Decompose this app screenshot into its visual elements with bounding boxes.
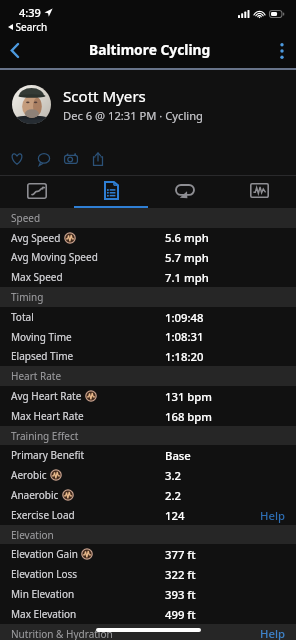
button[interactable]: Max Elevation [0,604,296,624]
staticText: Baltimore Cycling [89,40,211,59]
staticText: Help [260,508,285,523]
button[interactable]: Map [0,175,74,208]
staticText: Elevation Loss [11,567,78,581]
button[interactable]: Primary Benefit [0,445,296,465]
button[interactable]: Max Heart Rate [0,406,296,426]
staticText: Anaerobic [11,488,59,502]
button[interactable]: Moving Time [0,327,296,346]
staticText: 2.2 [165,488,181,503]
staticText: Scott Myers [63,86,146,107]
staticText: 3.2 [165,468,181,483]
staticText: Avg Moving Speed [11,250,98,264]
button[interactable]: Elevation Loss [0,564,296,584]
staticText: Dec 6 @ 12:31 PM · Cycling [63,108,203,123]
button[interactable]: Avg Moving Speed [0,247,296,267]
staticText: Speed [11,211,41,225]
staticText: Max Heart Rate [11,409,84,423]
button[interactable]: Laps [148,175,222,208]
button[interactable]: Comment [30,144,57,174]
staticText: Elapsed Time [11,349,74,363]
staticText: Elevation [11,528,54,542]
button[interactable]: Avg Speed [0,228,296,247]
staticText: Training Effect [11,429,79,443]
button[interactable]: Min Elevation [0,584,296,604]
button[interactable]: Charts [222,175,296,208]
button[interactable]: Avg Heart Rate [0,386,296,406]
staticText: 131 bpm [165,389,213,404]
staticText: Base [165,448,191,463]
staticText: Moving Time [11,330,72,344]
staticText: 1:18:20 [165,349,204,364]
staticText: Help [260,626,285,640]
staticText: Avg Heart Rate [11,389,82,403]
staticText: 322 ft [165,567,196,582]
staticText: 393 ft [165,587,196,602]
button[interactable]: Help [252,626,296,640]
staticText: 499 ft [165,607,196,622]
button[interactable]: Share [84,144,111,174]
staticText: Avg Speed [11,231,61,245]
button[interactable]: Total [0,307,296,327]
button[interactable]: Max Speed [0,267,296,287]
button[interactable]: Anaerobic [0,485,296,505]
staticText: 377 ft [165,547,196,562]
button[interactable]: Elevation Gain [0,544,296,564]
staticText: 7.1 mph [165,270,209,285]
staticText: 124 [165,508,185,523]
staticText: 4:39 [19,5,41,20]
button[interactable]: Aerobic [0,465,296,485]
button[interactable]: Exercise Load [0,505,296,525]
staticText: Timing [11,290,44,304]
staticText: 5.7 mph [165,250,209,265]
button[interactable]: Back [0,33,30,68]
staticText: Elevation Gain [11,547,78,561]
button[interactable]: Add photo [57,144,84,174]
staticText: Aerobic [11,468,47,482]
staticText: Heart Rate [11,369,62,383]
staticText: Max Elevation [11,607,77,621]
button[interactable]: Like [3,144,30,174]
staticText: 5.6 mph [165,230,209,245]
staticText: Total [11,310,34,324]
button[interactable]: Elapsed Time [0,346,296,366]
staticText: Exercise Load [11,508,75,522]
staticText: 1:09:48 [165,310,204,325]
staticText: Nutrition & Hydration [11,627,113,640]
staticText: Search [13,20,48,34]
staticText: Primary Benefit [11,448,85,462]
button[interactable]: Details [74,175,148,208]
staticText: Min Elevation [11,587,75,601]
staticText: 1:08:31 [165,329,204,344]
staticText: 168 bpm [165,409,213,424]
staticText: Max Speed [11,270,63,284]
button[interactable]: More options [268,33,296,68]
